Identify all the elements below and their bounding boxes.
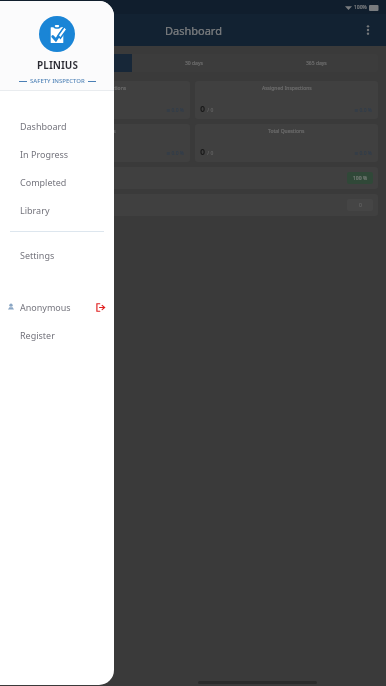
- staticText: ≡ 0.0 %: [354, 107, 373, 114]
- staticText: PLINIUS: [37, 58, 78, 72]
- staticText: 100 %: [353, 175, 368, 182]
- button[interactable]: Assigned Inspections: [195, 81, 378, 119]
- staticText: SAFETY INSPECTOR: [30, 77, 85, 85]
- staticText: Total Answers: [83, 128, 116, 135]
- staticText: 0: [359, 202, 362, 209]
- button[interactable]: Library: [0, 196, 114, 224]
- button[interactable]: 100 %: [8, 167, 378, 189]
- button[interactable]: Settings: [0, 241, 114, 269]
- button[interactable]: 30 days: [132, 54, 255, 72]
- button[interactable]: Register: [0, 321, 114, 349]
- staticText: ≡ 0.0 %: [354, 150, 373, 157]
- staticText: 7 days: [63, 60, 78, 67]
- staticText: Register: [20, 329, 55, 341]
- button[interactable]: 7 days: [8, 54, 132, 72]
- staticText: ≡ 0.0 %: [166, 150, 185, 157]
- button[interactable]: Completed Inspections: [8, 81, 190, 119]
- staticText: Anonymous: [20, 301, 71, 313]
- staticText: 30 days: [185, 60, 203, 67]
- button[interactable]: Log out: [90, 297, 110, 317]
- staticText: / 0: [206, 150, 214, 157]
- staticText: Dashboard: [20, 120, 67, 132]
- button[interactable]: Completed: [0, 168, 114, 196]
- staticText: / 0: [206, 107, 214, 114]
- button[interactable]: In Progress: [0, 140, 114, 168]
- button[interactable]: Total Questions: [195, 124, 378, 162]
- staticText: 100%: [354, 4, 367, 11]
- button[interactable]: Dashboard: [0, 112, 114, 140]
- staticText: Settings: [20, 249, 55, 261]
- button[interactable]: Total Answers: [8, 124, 190, 162]
- staticText: Dashboard: [165, 23, 222, 38]
- staticText: Completed: [20, 176, 67, 188]
- button[interactable]: 0: [8, 194, 378, 216]
- button[interactable]: 365 days: [255, 54, 378, 72]
- staticText: 0: [200, 102, 206, 114]
- staticText: In Progress: [20, 148, 69, 160]
- staticText: 0: [200, 145, 206, 157]
- staticText: Completed Inspections: [72, 85, 127, 92]
- staticText: Assigned Inspections: [262, 85, 312, 92]
- button[interactable]: Anonymous: [0, 293, 114, 321]
- staticText: ≡ 0.0 %: [166, 107, 185, 114]
- staticText: / 0: [19, 150, 27, 157]
- staticText: 365 days: [306, 60, 327, 67]
- staticText: Library: [20, 204, 50, 216]
- button[interactable]: More options: [356, 18, 380, 42]
- staticText: Total Questions: [268, 128, 305, 135]
